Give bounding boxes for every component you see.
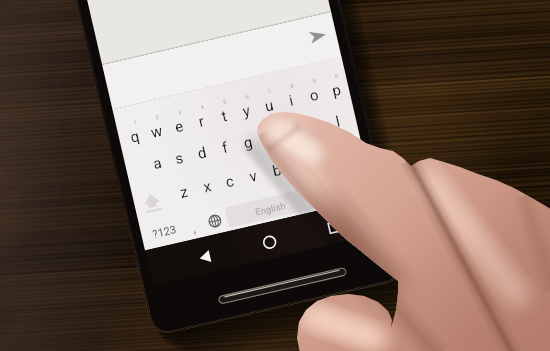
- staticText: h: [264, 128, 277, 147]
- button[interactable]: Key a: [143, 146, 172, 183]
- button[interactable]: Key f: [210, 131, 239, 167]
- staticText: t: [220, 107, 229, 126]
- button[interactable]: Key g: [232, 126, 262, 162]
- button[interactable]: Key c: [216, 164, 245, 201]
- button[interactable]: Backspace: [270, 150, 307, 188]
- button[interactable]: Key k: [300, 110, 330, 146]
- staticText: b: [270, 161, 283, 181]
- staticText: m: [313, 150, 331, 171]
- button[interactable]: Home: [242, 219, 297, 265]
- staticText: k: [309, 117, 320, 137]
- staticText: u: [263, 96, 275, 116]
- button[interactable]: Symbols: [146, 213, 182, 251]
- staticText: ?123: [151, 223, 177, 241]
- button[interactable]: Key o: [298, 79, 328, 115]
- button[interactable]: Comma: [178, 207, 208, 243]
- staticText: 0: [334, 73, 339, 79]
- staticText: 8: [289, 83, 294, 90]
- button[interactable]: Key p: [321, 73, 350, 110]
- staticText: v: [247, 167, 259, 186]
- staticText: 2: [155, 114, 160, 121]
- staticText: d: [196, 143, 208, 163]
- staticText: 1: [132, 119, 137, 126]
- staticText: 5: [222, 98, 227, 105]
- staticText: x: [201, 177, 213, 196]
- button[interactable]: Key j: [278, 115, 308, 151]
- button[interactable]: Key d: [187, 136, 217, 172]
- staticText: l: [334, 113, 342, 131]
- button[interactable]: Key m: [308, 143, 338, 179]
- button[interactable]: Key l: [323, 105, 352, 141]
- button[interactable]: Key u: [254, 89, 283, 125]
- staticText: a: [151, 154, 164, 173]
- staticText: 4: [200, 104, 205, 110]
- staticText: 9: [312, 78, 317, 84]
- button[interactable]: Key x: [192, 170, 222, 206]
- button[interactable]: Change keyboard language: [200, 203, 229, 239]
- button[interactable]: Key s: [165, 141, 195, 178]
- staticText: s: [173, 149, 185, 168]
- button[interactable]: Space: [222, 181, 319, 233]
- button[interactable]: Key e: [164, 110, 194, 146]
- staticText: ,: [191, 222, 197, 236]
- staticText: n: [294, 156, 307, 175]
- staticText: o: [308, 86, 320, 105]
- staticText: i: [287, 92, 295, 110]
- button[interactable]: Key v: [239, 159, 269, 195]
- staticText: y: [240, 101, 252, 121]
- button[interactable]: Key y: [231, 94, 261, 130]
- button[interactable]: Recent apps: [306, 204, 361, 250]
- staticText: g: [241, 133, 254, 152]
- staticText: q: [128, 127, 141, 147]
- button[interactable]: Send message: [294, 12, 342, 60]
- button[interactable]: Key i: [276, 84, 306, 120]
- staticText: f: [220, 138, 230, 157]
- button[interactable]: Key r: [186, 104, 216, 141]
- button[interactable]: Key t: [209, 99, 238, 136]
- staticText: z: [178, 183, 190, 202]
- button[interactable]: Key n: [285, 148, 314, 185]
- button[interactable]: Key q: [119, 120, 149, 156]
- button[interactable]: Key h: [256, 120, 285, 157]
- staticText: e: [173, 117, 185, 136]
- staticText: j: [288, 123, 296, 142]
- button[interactable]: Key z: [170, 175, 199, 211]
- button[interactable]: Key b: [261, 154, 291, 190]
- staticText: r: [196, 112, 206, 131]
- button[interactable]: Shift: [134, 184, 171, 222]
- staticText: 7: [267, 88, 272, 95]
- staticText: 6: [244, 93, 250, 100]
- staticText: 3: [177, 109, 182, 115]
- button[interactable]: Back: [178, 234, 232, 280]
- staticText: w: [149, 122, 164, 142]
- staticText: p: [330, 81, 343, 100]
- staticText: c: [224, 172, 236, 191]
- staticText: English: [254, 200, 287, 218]
- button[interactable]: Key w: [141, 115, 171, 151]
